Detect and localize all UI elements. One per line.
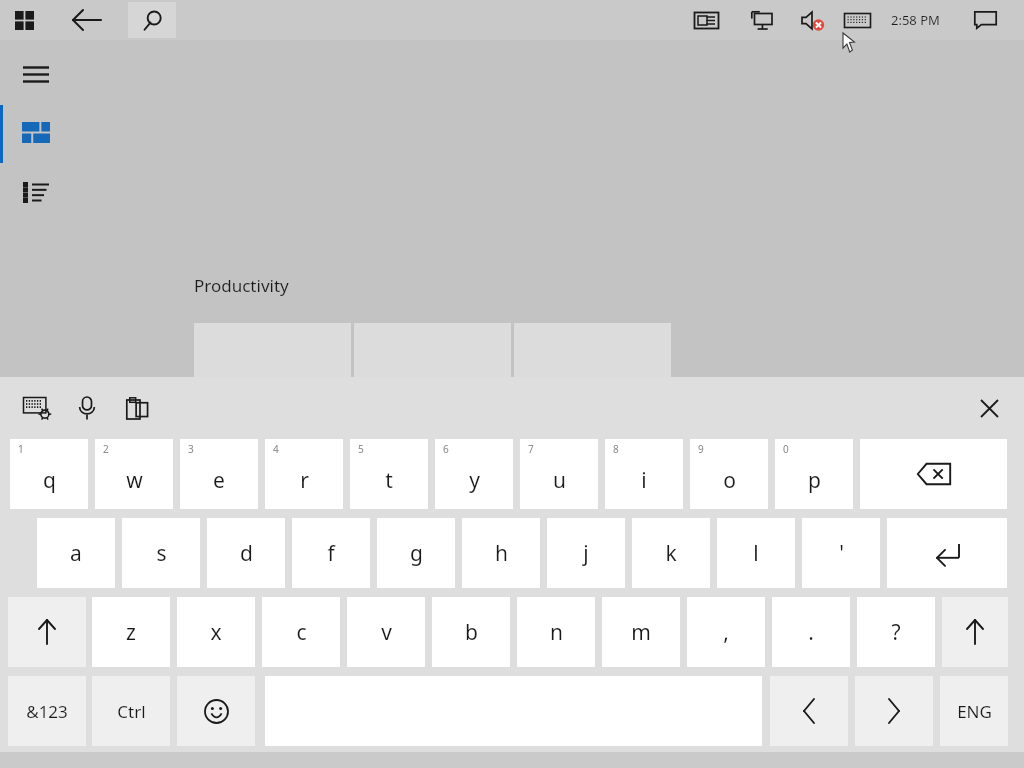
button[interactable]: Left <box>770 676 848 746</box>
button[interactable]: ENG <box>940 676 1008 746</box>
button[interactable]: 4 <box>265 439 343 509</box>
button[interactable]: 1 <box>10 439 88 509</box>
staticText: ENG <box>957 700 992 723</box>
button[interactable]: ' <box>802 518 880 588</box>
button[interactable]: 6 <box>435 439 513 509</box>
staticText: d <box>240 539 253 568</box>
button[interactable]: 2 <box>95 439 173 509</box>
staticText: Ctrl <box>117 700 146 723</box>
staticText: p <box>808 466 821 495</box>
staticText: k <box>665 539 677 568</box>
button[interactable]: 5 <box>350 439 428 509</box>
button[interactable]: Back <box>57 0 115 40</box>
button[interactable]: Ctrl <box>92 676 170 746</box>
button[interactable]: Project display <box>742 0 782 40</box>
button[interactable]: n <box>517 597 595 667</box>
button[interactable]: d <box>207 518 285 588</box>
button[interactable]: Clipboard history <box>114 385 160 431</box>
button[interactable]: , <box>687 597 765 667</box>
button[interactable]: Dictation <box>64 385 110 431</box>
staticText: v <box>381 618 392 647</box>
button[interactable]: Menu <box>0 50 72 98</box>
staticText: 6 <box>443 442 449 456</box>
staticText: x <box>210 618 222 647</box>
button[interactable]: g <box>377 518 455 588</box>
button[interactable]: Shift <box>8 597 86 667</box>
button[interactable]: k <box>632 518 710 588</box>
button[interactable]: Backspace <box>860 439 1007 509</box>
staticText: 8 <box>613 442 619 456</box>
staticText: o <box>723 466 736 495</box>
staticText: 1 <box>18 442 24 456</box>
button[interactable]: Action center <box>962 0 1008 40</box>
staticText: 4 <box>273 442 279 456</box>
staticText: h <box>495 539 508 568</box>
button[interactable]: h <box>462 518 540 588</box>
button[interactable]: All apps <box>0 168 72 216</box>
button[interactable]: 8 <box>605 439 683 509</box>
button[interactable]: 0 <box>775 439 853 509</box>
staticText: 7 <box>528 442 534 456</box>
button[interactable]: ? <box>857 597 935 667</box>
staticText: b <box>465 618 478 647</box>
staticText: ' <box>839 539 844 568</box>
staticText: e <box>213 466 225 495</box>
button[interactable]: l <box>717 518 795 588</box>
staticText: i <box>641 466 647 495</box>
button[interactable]: Touch keyboard <box>836 0 878 40</box>
button[interactable]: Close keyboard <box>966 385 1012 431</box>
staticText: y <box>469 466 480 495</box>
staticText: 3 <box>188 442 194 456</box>
staticText: s <box>156 539 167 568</box>
staticText: 2 <box>103 442 109 456</box>
button[interactable]: News and interests <box>686 0 726 40</box>
staticText: 0 <box>783 442 789 456</box>
button[interactable]: b <box>432 597 510 667</box>
staticText: l <box>753 539 759 568</box>
button[interactable]: Enter <box>887 518 1007 588</box>
staticText: 9 <box>698 442 704 456</box>
staticText: , <box>723 618 729 647</box>
button[interactable]: c <box>262 597 340 667</box>
button[interactable]: Volume muted <box>792 0 834 40</box>
button[interactable]: Start <box>2 0 46 40</box>
button[interactable]: x <box>177 597 255 667</box>
staticText: m <box>631 618 651 647</box>
button[interactable]: . <box>772 597 850 667</box>
button[interactable]: a <box>37 518 115 588</box>
button[interactable]: 3 <box>180 439 258 509</box>
button[interactable]: Pinned tiles <box>0 108 72 156</box>
button[interactable]: s <box>122 518 200 588</box>
button[interactable]: Keyboard settings <box>14 385 60 431</box>
staticText: r <box>300 466 309 495</box>
staticText: 2:58 PM <box>891 11 940 29</box>
button[interactable]: Emoji <box>177 676 255 746</box>
staticText: z <box>126 618 136 647</box>
button[interactable]: 7 <box>520 439 598 509</box>
button[interactable]: &123 <box>8 676 86 746</box>
button[interactable]: Right <box>855 676 933 746</box>
button[interactable]: 9 <box>690 439 768 509</box>
staticText: f <box>327 539 335 568</box>
staticText: g <box>410 539 423 568</box>
staticText: a <box>70 539 82 568</box>
button[interactable]: Shift <box>942 597 1008 667</box>
staticText: q <box>43 466 56 495</box>
staticText: t <box>385 466 393 495</box>
staticText: u <box>553 466 566 495</box>
button[interactable]: f <box>292 518 370 588</box>
staticText: c <box>296 618 307 647</box>
button[interactable]: z <box>92 597 170 667</box>
button[interactable]: 2:58 PM <box>884 0 946 40</box>
staticText: j <box>583 539 589 568</box>
button[interactable]: j <box>547 518 625 588</box>
button[interactable]: Search <box>128 2 176 38</box>
button[interactable]: v <box>347 597 425 667</box>
button[interactable]: m <box>602 597 680 667</box>
staticText: n <box>550 618 563 647</box>
staticText: 5 <box>358 442 364 456</box>
